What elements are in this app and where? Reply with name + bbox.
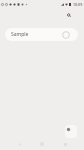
button[interactable]: Sample: [5, 28, 78, 41]
button[interactable]: Recent apps: [59, 138, 71, 150]
button[interactable]: Add: [65, 125, 77, 138]
staticText: Sample: [11, 31, 29, 38]
button[interactable]: Home: [36, 138, 48, 150]
button[interactable]: More options: [63, 9, 74, 20]
staticText: 10:09: [73, 2, 83, 7]
